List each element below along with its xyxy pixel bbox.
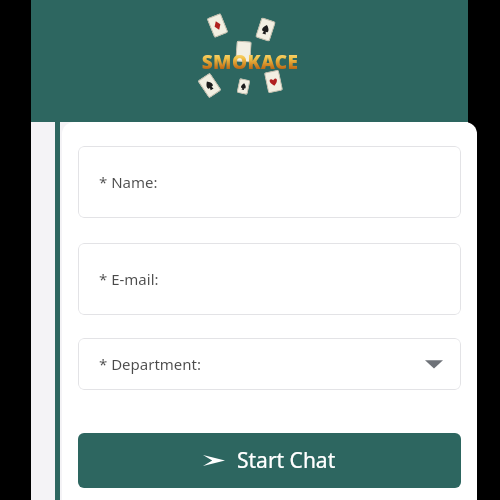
button[interactable]: * E-mail: bbox=[78, 243, 461, 315]
button[interactable]: * Department: bbox=[78, 338, 461, 390]
staticText: Start Chat bbox=[237, 446, 336, 475]
staticText: SMOKACE bbox=[192, 49, 308, 75]
staticText: * Name: bbox=[99, 172, 158, 192]
button[interactable]: * Name: bbox=[78, 146, 461, 218]
button[interactable]: Start Chat bbox=[78, 433, 461, 488]
staticText: * E-mail: bbox=[99, 269, 159, 289]
staticText: * Department: bbox=[99, 354, 202, 374]
